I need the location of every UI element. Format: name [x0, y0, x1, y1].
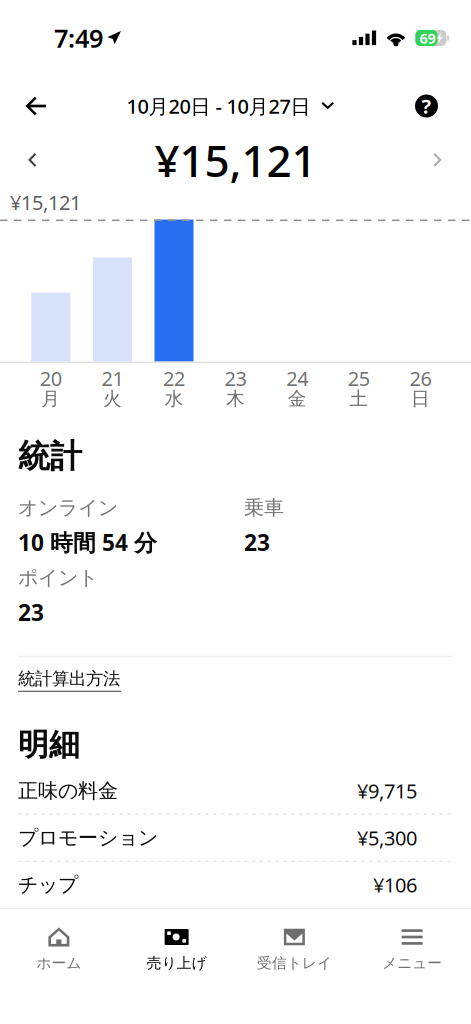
button[interactable]: 前の週 — [0, 136, 54, 184]
staticText: 25 — [348, 365, 370, 392]
button[interactable]: 次の週 — [415, 136, 471, 184]
button[interactable]: 10月20日 - 10月27日 — [126, 84, 334, 128]
staticText: 乗車 — [244, 495, 284, 520]
staticText: 24 — [286, 365, 308, 392]
staticText: 土 — [349, 387, 368, 410]
staticText: 金 — [288, 387, 307, 410]
staticText: チップ — [18, 872, 78, 897]
staticText: 統計 — [18, 437, 82, 476]
staticText: 明細 — [18, 726, 80, 764]
button[interactable]: 売り上げ — [118, 909, 236, 971]
staticText: ¥9,715 — [357, 777, 417, 804]
staticText: 水 — [164, 387, 183, 410]
staticText: 10 時間 54 分 — [18, 527, 157, 557]
staticText: 統計算出方法 — [18, 668, 120, 689]
button[interactable]: 受信トレイ — [235, 909, 353, 971]
staticText: ¥5,300 — [357, 824, 417, 851]
staticText: 木 — [226, 387, 245, 410]
staticText: 26 — [409, 365, 431, 392]
staticText: 21 — [101, 365, 123, 392]
staticText: 69 — [419, 28, 435, 48]
staticText: 22 — [163, 365, 185, 392]
staticText: ¥15,121 — [10, 189, 81, 216]
staticText: ポイント — [18, 565, 98, 590]
button[interactable]: 統計算出方法 — [18, 657, 121, 692]
staticText: 10月20日 - 10月27日 — [126, 93, 310, 119]
staticText: 7:49 — [54, 21, 103, 55]
staticText: 正味の料金 — [18, 778, 118, 803]
staticText: ? — [421, 93, 431, 119]
button[interactable]: メニュー — [353, 909, 471, 971]
staticText: ¥15,121 — [154, 131, 316, 189]
staticText: 受信トレイ — [257, 954, 332, 972]
staticText: メニュー — [382, 954, 442, 972]
staticText: ホーム — [36, 954, 81, 972]
button[interactable]: ホーム — [0, 909, 118, 971]
staticText: 月 — [41, 387, 60, 410]
staticText: 23 — [225, 365, 247, 392]
staticText: プロモーション — [18, 825, 158, 850]
staticText: 日 — [411, 387, 430, 410]
staticText: オンライン — [18, 495, 118, 520]
staticText: 23 — [18, 597, 44, 627]
button[interactable]: 戻る — [0, 84, 60, 128]
staticText: 売り上げ — [147, 954, 207, 972]
button[interactable]: ヘルプ — [401, 84, 471, 128]
staticText: 20 — [40, 365, 62, 392]
staticText: 23 — [244, 527, 270, 557]
staticText: 火 — [103, 387, 122, 410]
staticText: ¥106 — [373, 871, 417, 898]
